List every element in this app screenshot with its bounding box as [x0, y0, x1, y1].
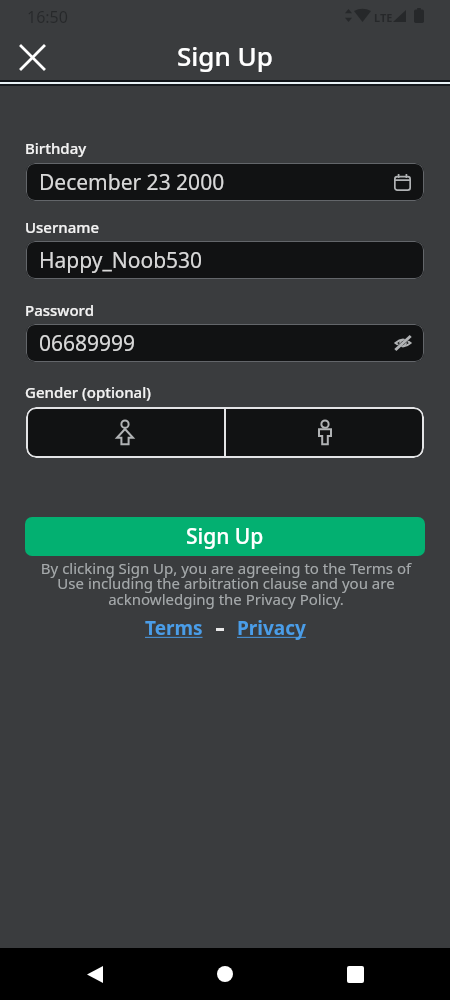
button[interactable]: Sign Up: [25, 517, 425, 556]
staticText: Terms: [145, 615, 203, 641]
staticText: LTE: [374, 10, 393, 25]
staticText: Birthday: [25, 138, 87, 158]
button[interactable]: Happy_Noob530: [26, 241, 424, 279]
staticText: Username: [25, 217, 100, 237]
button[interactable]: 06689999: [26, 324, 424, 362]
other: Toggle password visibility: [395, 336, 411, 350]
staticText: Sign Up: [177, 38, 273, 73]
button[interactable]: Home: [201, 948, 249, 1000]
staticText: Password: [25, 300, 94, 320]
button[interactable]: Male: [226, 407, 424, 458]
staticText: 06689999: [39, 329, 136, 358]
staticText: Sign Up: [186, 522, 264, 551]
other: Pick date: [394, 174, 411, 191]
staticText: 16:50: [27, 6, 68, 28]
button[interactable]: Privacy: [237, 615, 306, 641]
button[interactable]: Recents: [331, 948, 379, 1000]
staticText: Privacy: [237, 615, 306, 641]
staticText: Happy_Noob530: [39, 246, 203, 275]
button[interactable]: December 23 2000: [26, 163, 424, 201]
button[interactable]: Back: [71, 948, 119, 1000]
button[interactable]: Female: [26, 407, 224, 458]
staticText: December 23 2000: [39, 168, 225, 197]
button[interactable]: Terms: [145, 615, 203, 641]
button[interactable]: Close: [9, 34, 56, 81]
staticText: Gender (optional): [25, 382, 151, 402]
staticText: By clicking Sign Up, you are agreeing to…: [35, 558, 417, 610]
